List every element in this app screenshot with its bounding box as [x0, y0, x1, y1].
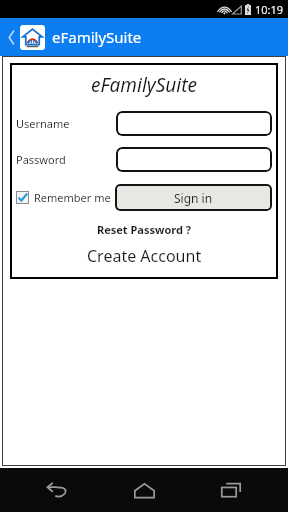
button[interactable]: Back: [29, 468, 87, 512]
button[interactable]: Reset Password ?: [16, 222, 272, 237]
button[interactable]: Sign in: [115, 184, 272, 211]
button[interactable]: Create Account: [16, 245, 272, 267]
staticText: 10:19: [255, 2, 284, 17]
button[interactable]: Navigate up: [3, 22, 20, 52]
staticText: Username: [16, 116, 116, 131]
button[interactable]: Recent apps: [202, 468, 260, 512]
button[interactable]: Password: [116, 147, 272, 172]
button[interactable]: Home: [115, 468, 173, 512]
button[interactable]: Username: [116, 111, 272, 136]
button[interactable]: Remember me: [16, 187, 111, 208]
staticText: Sign in: [174, 190, 213, 206]
staticText: Password: [16, 152, 116, 167]
staticText: eFamilySuite: [52, 27, 142, 47]
staticText: eFamilySuite: [16, 72, 272, 98]
staticText: Reset Password ?: [97, 222, 192, 237]
staticText: Remember me: [34, 190, 111, 205]
staticText: Create Account: [87, 245, 202, 267]
